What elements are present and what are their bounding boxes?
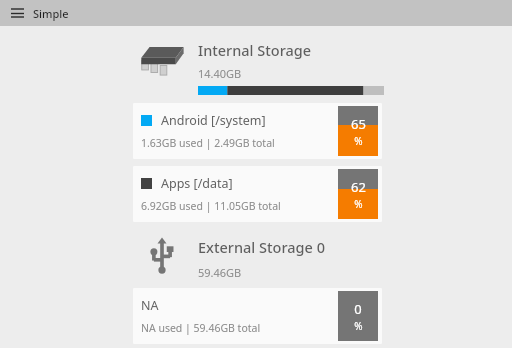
- staticText: 65: [351, 115, 366, 133]
- staticText: 1.63GB used | 2.49GB total: [141, 136, 275, 150]
- staticText: Simple: [33, 6, 69, 21]
- staticText: NA used | 59.46GB total: [141, 321, 261, 335]
- staticText: NA: [141, 297, 159, 314]
- staticText: 59.46GB: [198, 265, 242, 280]
- staticText: External Storage 0: [198, 237, 325, 257]
- staticText: Apps [/data]: [161, 175, 233, 192]
- staticText: %: [354, 197, 363, 211]
- staticText: 62: [351, 178, 366, 196]
- button[interactable]: Open navigation menu: [8, 4, 26, 22]
- button[interactable]: NA: [133, 288, 382, 344]
- staticText: 14.40GB: [198, 66, 242, 81]
- staticText: 0: [354, 300, 362, 318]
- staticText: %: [354, 319, 363, 333]
- staticText: Android [/system]: [161, 112, 266, 129]
- staticText: Internal Storage: [198, 40, 312, 60]
- button[interactable]: Apps [/data]: [133, 166, 382, 222]
- button[interactable]: Android [/system]: [133, 103, 382, 159]
- staticText: 6.92GB used | 11.05GB total: [141, 199, 281, 213]
- staticText: %: [354, 134, 363, 148]
